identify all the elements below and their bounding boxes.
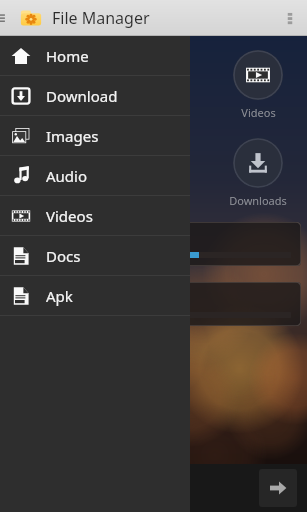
staticText: Home <box>46 46 89 66</box>
button[interactable]: Download <box>0 76 190 115</box>
staticText: Videos <box>46 206 93 226</box>
button[interactable]: Home <box>0 36 190 75</box>
staticText: Images <box>46 126 99 146</box>
button[interactable]: 6.72 Gb /29.32 Gb <box>40 282 301 326</box>
button[interactable]: Docs <box>0 236 190 275</box>
button[interactable]: Apk <box>0 276 190 315</box>
staticText: Apk <box>46 286 73 306</box>
staticText: Audio <box>46 166 88 186</box>
button[interactable]: Loading <box>30 464 307 512</box>
button[interactable]: Videos <box>221 50 295 120</box>
button[interactable]: Images <box>0 116 190 155</box>
button[interactable]: Next <box>259 469 297 507</box>
button[interactable]: 8.51 Gb /13.16 Gb <box>40 222 301 266</box>
staticText: Docs <box>46 246 81 266</box>
button[interactable]: Open navigation drawer <box>0 0 14 36</box>
button[interactable]: Audio <box>0 156 190 195</box>
button[interactable]: Downloads <box>221 138 295 208</box>
staticText: Downloads <box>229 193 287 208</box>
staticText: Download <box>46 86 118 106</box>
button[interactable]: More options <box>273 0 307 36</box>
staticText: 6.72 Gb /29.32 Gb <box>50 288 159 306</box>
staticText: File Manager <box>52 7 150 29</box>
button[interactable]: Videos <box>0 196 190 235</box>
staticText: Videos <box>241 105 276 120</box>
staticText: 8.51 Gb /13.16 Gb <box>50 228 159 246</box>
